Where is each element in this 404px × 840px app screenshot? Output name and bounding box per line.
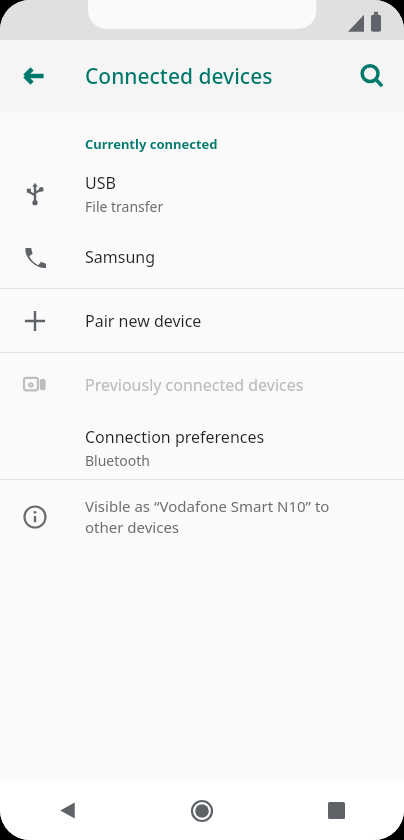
staticText: Bluetooth — [85, 451, 150, 470]
button[interactable]: Previously connected devices — [0, 353, 404, 416]
staticText: Samsung — [85, 246, 156, 268]
button[interactable]: Back — [0, 781, 134, 840]
button[interactable]: Samsung — [0, 225, 404, 288]
button[interactable]: USB — [0, 162, 404, 225]
staticText: Visible as “Vodafone Smart N10” to other… — [85, 496, 330, 538]
staticText: File transfer — [85, 197, 164, 216]
staticText: Pair new device — [85, 310, 202, 332]
button[interactable]: Pair new device — [0, 289, 404, 352]
staticText: Previously connected devices — [85, 374, 304, 396]
staticText: Connected devices — [85, 62, 273, 91]
button[interactable]: Connection preferences — [0, 416, 404, 479]
button[interactable]: Visible as “Vodafone Smart N10” to other… — [0, 480, 404, 554]
button[interactable]: Home — [134, 781, 269, 840]
staticText: USB — [85, 172, 116, 194]
button[interactable]: Recent apps — [269, 781, 404, 840]
staticText: Connection preferences — [85, 426, 265, 448]
button[interactable]: Search — [350, 54, 394, 98]
staticText: Currently connected — [85, 135, 218, 153]
button[interactable]: Back — [12, 54, 56, 98]
